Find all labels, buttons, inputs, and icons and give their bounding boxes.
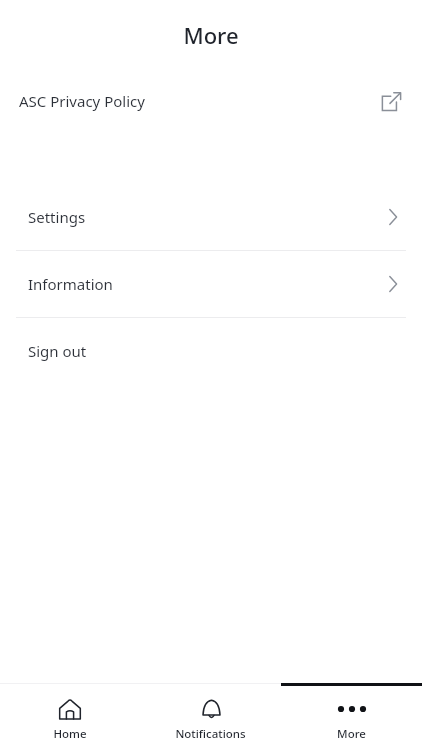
staticText: Information [28, 274, 113, 294]
staticText: Home [53, 726, 87, 742]
button[interactable]: ASC Privacy Policy [0, 70, 422, 132]
staticText: Notifications [175, 726, 246, 742]
staticText: More [183, 20, 239, 50]
button[interactable]: Notifications [140, 683, 281, 750]
other: Open ASC Privacy Policy in browser [377, 87, 405, 115]
button[interactable]: Sign out [0, 318, 422, 384]
button[interactable]: More [281, 683, 422, 750]
button[interactable]: Home [0, 683, 140, 750]
staticText: Settings [28, 207, 86, 227]
staticText: Sign out [28, 341, 87, 361]
staticText: More [337, 726, 366, 742]
button[interactable]: Information [0, 251, 422, 317]
staticText: ASC Privacy Policy [19, 91, 145, 111]
button[interactable]: Settings [0, 184, 422, 250]
